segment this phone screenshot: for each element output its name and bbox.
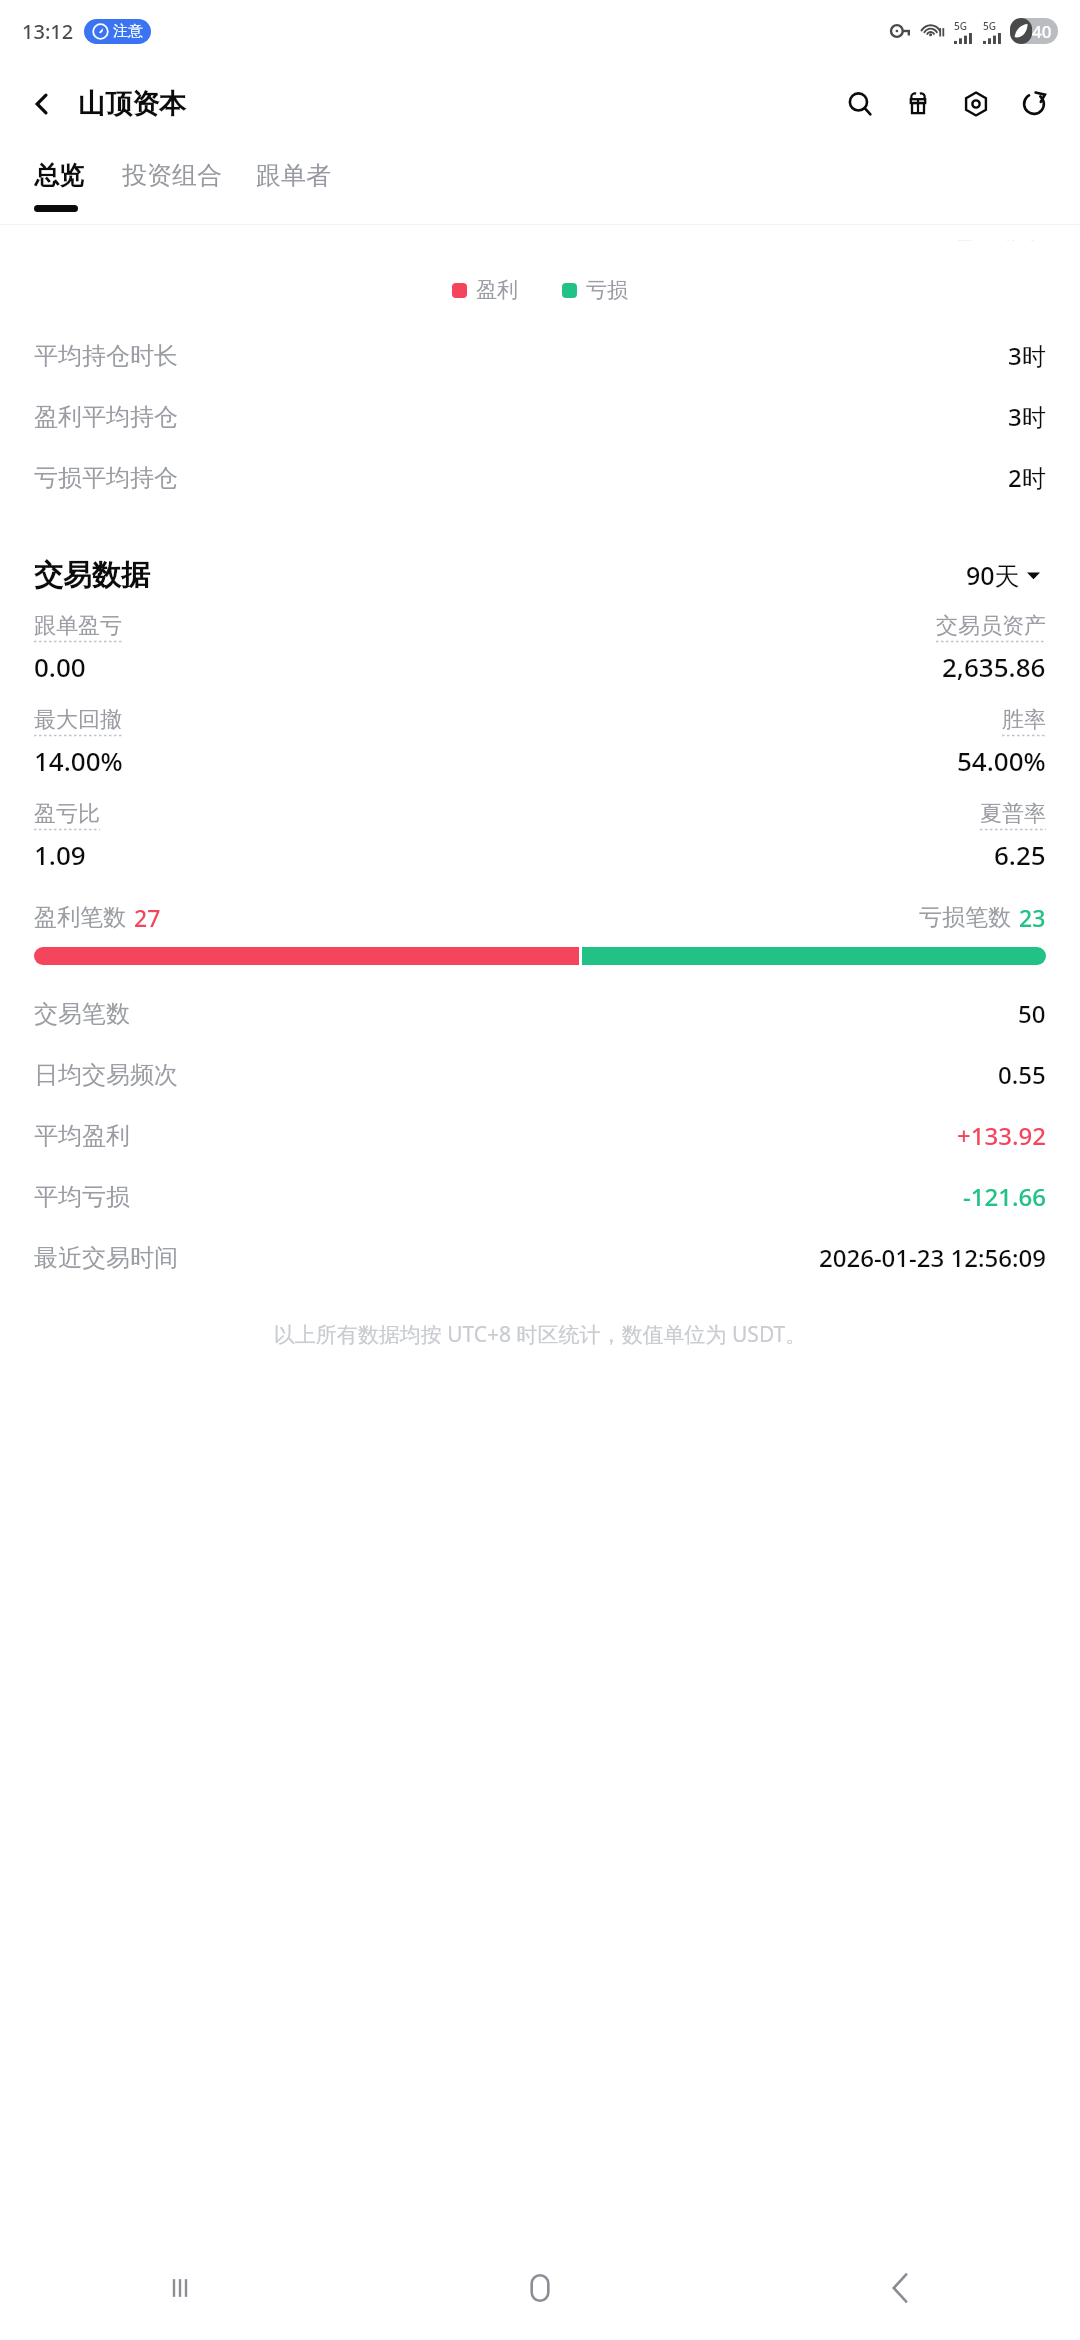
- staticText: 跟单盈亏: [34, 612, 122, 640]
- button[interactable]: 日均交易频次: [0, 1044, 1080, 1105]
- staticText: 以上所有数据均按 UTC+8 时区统计，数值单位为 USDT。: [34, 1320, 1046, 1349]
- button[interactable]: Back: [720, 2236, 1080, 2340]
- staticText: 注意: [113, 22, 143, 41]
- button[interactable]: 最近交易时间: [0, 1227, 1080, 1288]
- staticText: 5G: [954, 19, 967, 33]
- staticText: 平均持仓时长: [34, 341, 178, 371]
- button[interactable]: 亏损平均持仓: [0, 447, 1080, 508]
- staticText: 平均亏损: [34, 1182, 130, 1212]
- staticText: 6.25: [994, 837, 1046, 872]
- staticText: 2时: [1008, 461, 1046, 494]
- staticText: 盈利笔数: [34, 903, 126, 932]
- button[interactable]: Search: [836, 80, 884, 128]
- staticText: +133.92: [957, 1119, 1046, 1152]
- staticText: 亏损笔数: [919, 903, 1011, 932]
- button[interactable]: Home: [360, 2236, 720, 2340]
- button[interactable]: 平均持仓时长: [0, 325, 1080, 386]
- staticText: 90天: [966, 558, 1020, 592]
- button[interactable]: Recents: [0, 2236, 360, 2340]
- staticText: 50: [1018, 997, 1046, 1030]
- staticText: 最大回撤: [34, 706, 122, 734]
- staticText: 23: [1019, 902, 1046, 933]
- staticText: 盈亏比: [34, 800, 100, 828]
- staticText: 投资组合: [122, 160, 222, 191]
- staticText: 3时: [1008, 339, 1046, 372]
- staticText: 交易笔数: [34, 999, 130, 1029]
- staticText: 盈利平均持仓: [34, 402, 178, 432]
- staticText: 3时: [1008, 400, 1046, 433]
- button[interactable]: Back: [18, 80, 66, 128]
- staticText: 夏普率: [980, 800, 1046, 828]
- button[interactable]: Gift: [894, 80, 942, 128]
- button[interactable]: 跟单者: [256, 146, 331, 205]
- button[interactable]: Share: [1010, 80, 1058, 128]
- button[interactable]: 夏普率: [540, 800, 1046, 872]
- staticText: 亏损: [586, 277, 628, 303]
- staticText: 胜率: [1002, 706, 1046, 734]
- button[interactable]: 总览: [34, 146, 84, 205]
- staticText: 14.00%: [34, 743, 123, 778]
- staticText: 盈亏分布: [956, 237, 1044, 241]
- button[interactable]: 交易员资产: [540, 612, 1046, 684]
- button[interactable]: 最大回撤: [34, 706, 540, 778]
- button[interactable]: 胜率: [540, 706, 1046, 778]
- staticText: 0.00: [34, 649, 86, 684]
- staticText: 40: [1032, 20, 1052, 43]
- button[interactable]: 跟单盈亏: [34, 612, 540, 684]
- staticText: 跟单者: [256, 160, 331, 191]
- staticText: 2,635.86: [942, 649, 1046, 684]
- button[interactable]: 投资组合: [122, 146, 222, 205]
- staticText: 54.00%: [957, 743, 1046, 778]
- staticText: 27: [134, 902, 161, 933]
- button[interactable]: 平均亏损: [0, 1166, 1080, 1227]
- staticText: 交易数据: [34, 557, 150, 594]
- staticText: 0.55: [998, 1058, 1046, 1091]
- staticText: 盈利: [476, 277, 518, 303]
- staticText: 5G: [983, 19, 996, 33]
- button[interactable]: 盈亏比: [34, 800, 540, 872]
- button[interactable]: 交易笔数: [0, 983, 1080, 1044]
- staticText: 最近交易时间: [34, 1243, 178, 1273]
- staticText: 日均交易频次: [34, 1060, 178, 1090]
- staticText: 总览: [34, 160, 84, 191]
- button[interactable]: 注意: [84, 19, 151, 44]
- button[interactable]: 盈利平均持仓: [0, 386, 1080, 447]
- staticText: 山顶资本: [78, 87, 186, 121]
- staticText: 1.09: [34, 837, 86, 872]
- staticText: 亏损平均持仓: [34, 463, 178, 493]
- button[interactable]: 平均盈利: [0, 1105, 1080, 1166]
- staticText: 交易员资产: [936, 612, 1046, 640]
- staticText: 2026-01-23 12:56:09: [819, 1241, 1046, 1274]
- staticText: -121.66: [963, 1180, 1046, 1213]
- staticText: 平均盈利: [34, 1121, 130, 1151]
- button[interactable]: 90天: [960, 552, 1046, 598]
- staticText: 13:12: [22, 18, 74, 45]
- button[interactable]: Settings: [952, 80, 1000, 128]
